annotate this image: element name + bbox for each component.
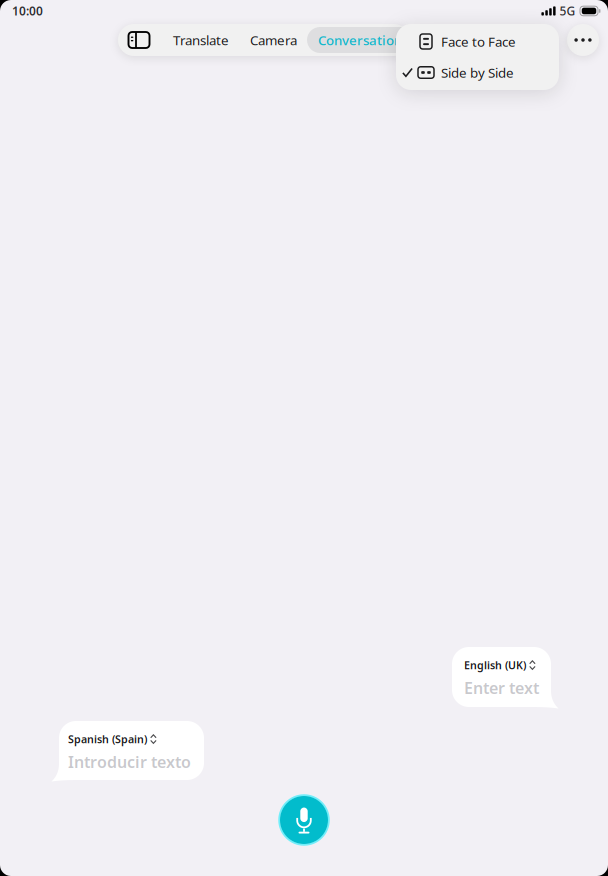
button[interactable]: Face to Face [396,26,559,57]
staticText: Enter text [464,677,539,698]
button[interactable]: More options [567,24,599,56]
button[interactable]: Show sidebar [118,24,160,56]
button[interactable]: Record [279,795,329,845]
staticText: English (UK) [464,658,526,672]
button[interactable]: Translate [160,24,242,56]
staticText: 10:00 [12,3,43,19]
staticText: Side by Side [441,64,514,81]
staticText: Face to Face [441,33,516,50]
staticText: 5G [559,3,575,19]
staticText: Introducir texto [68,751,191,772]
button[interactable]: Side by Side [396,57,559,88]
staticText: Translate [173,31,229,49]
staticText: Spanish (Spain) [68,732,147,746]
staticText: Camera [250,31,297,49]
button[interactable]: Conversation [304,24,416,56]
staticText: Conversation [318,31,402,49]
button[interactable]: Spanish (Spain) [50,721,204,783]
button[interactable]: Camera [242,24,304,56]
button[interactable]: English (UK) [452,647,560,710]
